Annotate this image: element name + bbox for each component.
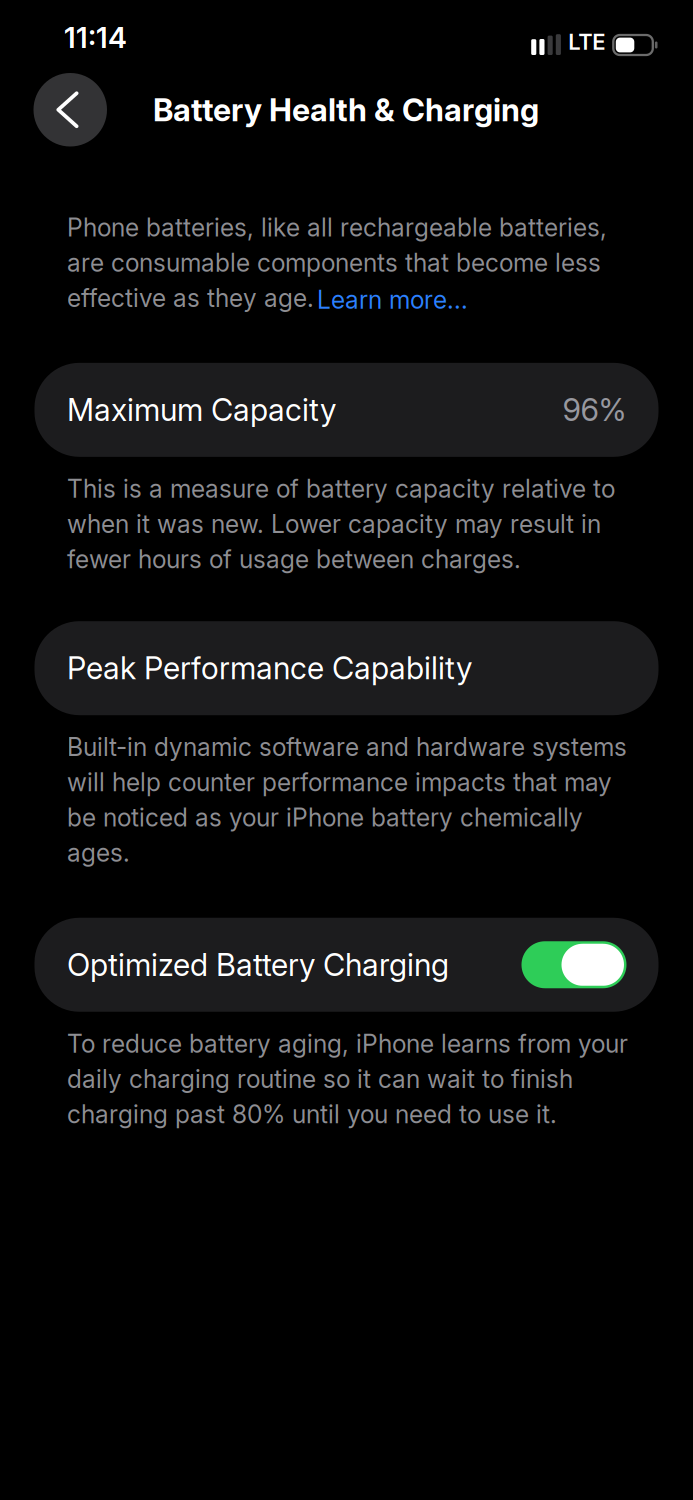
- staticText: Maximum Capacity: [67, 391, 336, 428]
- staticText: LTE: [568, 28, 605, 55]
- staticText: Built-in dynamic software and hardware s…: [67, 732, 627, 868]
- staticText: Learn more...: [317, 285, 468, 315]
- button[interactable]: Maximum Capacity: [34, 363, 658, 457]
- staticText: Phone batteries, like all rechargeable b…: [67, 212, 607, 313]
- staticText: 96%: [562, 391, 626, 428]
- button[interactable]: Back: [33, 73, 107, 146]
- button[interactable]: Peak Performance Capability: [34, 621, 658, 715]
- button[interactable]: Optimized Battery Charging: [34, 918, 658, 1012]
- staticText: Battery Health & Charging: [153, 91, 539, 129]
- staticText: 11:14: [64, 20, 127, 55]
- staticText: This is a measure of battery capacity re…: [67, 474, 615, 574]
- staticText: To reduce battery aging, iPhone learns f…: [67, 1029, 628, 1129]
- staticText: Peak Performance Capability: [67, 650, 472, 687]
- staticText: Optimized Battery Charging: [67, 946, 449, 983]
- button[interactable]: Learn more...: [317, 285, 468, 315]
